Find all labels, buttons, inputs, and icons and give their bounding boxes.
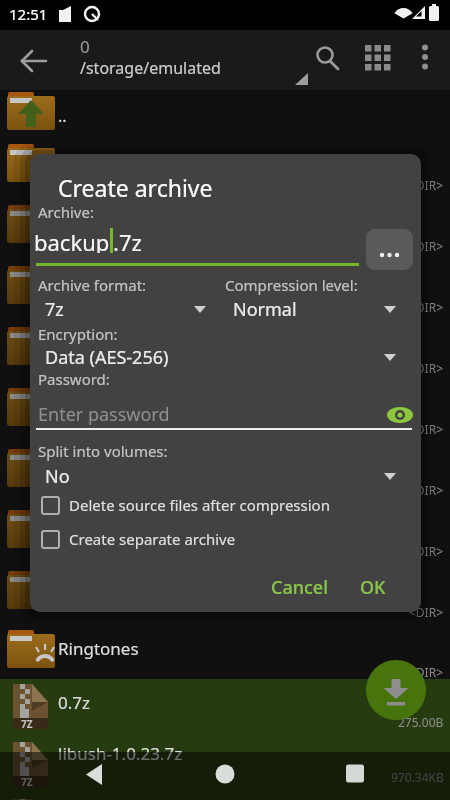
staticText: Create separate archive [69,529,236,549]
staticText: Compression level: [225,275,358,295]
button[interactable] [30,462,406,492]
button[interactable] [205,757,245,797]
staticText: <DIR> [409,238,444,254]
staticText: Enter password [38,402,170,427]
staticText: Split into volumes: [38,441,168,461]
staticText: 7Z [21,717,33,731]
button[interactable] [75,757,115,797]
staticText: backup [34,227,110,253]
staticText: <DIR> [409,177,444,193]
button[interactable] [41,496,60,515]
button[interactable] [385,399,415,429]
staticText: 12:51 [9,4,48,24]
button[interactable] [405,40,445,80]
staticText: 0 [80,35,90,58]
staticText: 275.00B [398,714,444,730]
button[interactable] [366,660,426,720]
staticText: OK [360,575,386,600]
staticText: <DIR> [409,299,444,315]
staticText: 7z [45,297,64,322]
staticText: Delete source files after compression [69,495,330,515]
staticText: 970.34KB [391,769,444,785]
button[interactable] [307,40,347,80]
button[interactable] [335,757,375,797]
staticText: libush-1.0.23.7z [58,742,183,765]
button[interactable] [30,343,406,373]
button[interactable] [41,530,60,549]
button[interactable] [14,41,54,81]
staticText: 0.7z [58,691,90,714]
staticText: <DIR> [409,664,444,680]
button[interactable] [0,618,450,679]
staticText: .. [58,105,67,127]
staticText: <DIR> [409,421,444,437]
button[interactable]: /storage/emulated [78,58,314,88]
button[interactable] [0,679,450,737]
button[interactable] [358,40,398,80]
staticText: Encryption: [38,324,118,344]
staticText: Password: [38,369,110,389]
button[interactable] [0,90,450,130]
staticText: Normal [233,297,297,322]
staticText: .7z [113,227,142,253]
staticText: Archive: [38,202,94,222]
button[interactable] [220,295,406,325]
button[interactable]: Cancel [245,567,355,607]
staticText: No [45,464,70,489]
staticText: <DIR> [409,482,444,498]
staticText: <DIR> [409,604,444,620]
staticText: /storage/emulated [80,57,221,79]
staticText: Archive format: [38,275,147,295]
staticText: Ringtones [58,637,139,660]
button[interactable] [366,229,413,270]
button[interactable] [0,737,450,800]
staticText: Create archive [58,172,213,203]
staticText: Data (AES-256) [45,345,169,370]
button[interactable]: OK [345,567,401,607]
button[interactable] [30,295,216,325]
staticText: <DIR> [409,543,444,559]
staticText: Cancel [271,575,329,600]
staticText: 7Z [21,775,33,789]
staticText: <DIR> [409,360,444,376]
